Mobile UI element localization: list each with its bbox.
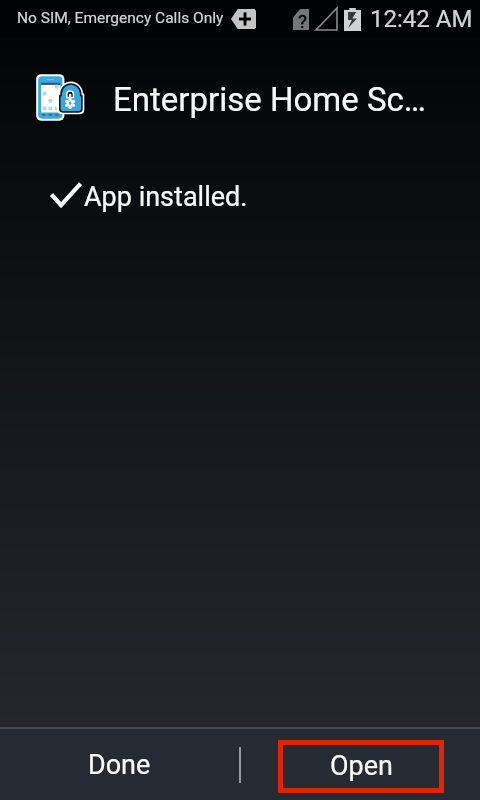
staticText: 12:42 AM <box>370 5 473 33</box>
staticText: ? <box>298 10 307 31</box>
button[interactable]: Open <box>278 740 444 793</box>
other: Enterprise Home Screen icon <box>36 74 84 122</box>
other: Signal strength <box>316 8 337 30</box>
staticText: Enterprise Home Sc… <box>113 80 426 119</box>
button[interactable]: Done <box>0 729 239 800</box>
staticText: App installed. <box>84 181 248 213</box>
other: No SIM card <box>293 9 309 30</box>
staticText: Done <box>88 749 151 781</box>
staticText: No SIM, Emergency Calls Only <box>17 9 224 27</box>
staticText: Open <box>330 750 393 782</box>
other: Emergency calls <box>231 9 256 29</box>
other: Battery charging <box>344 8 361 31</box>
